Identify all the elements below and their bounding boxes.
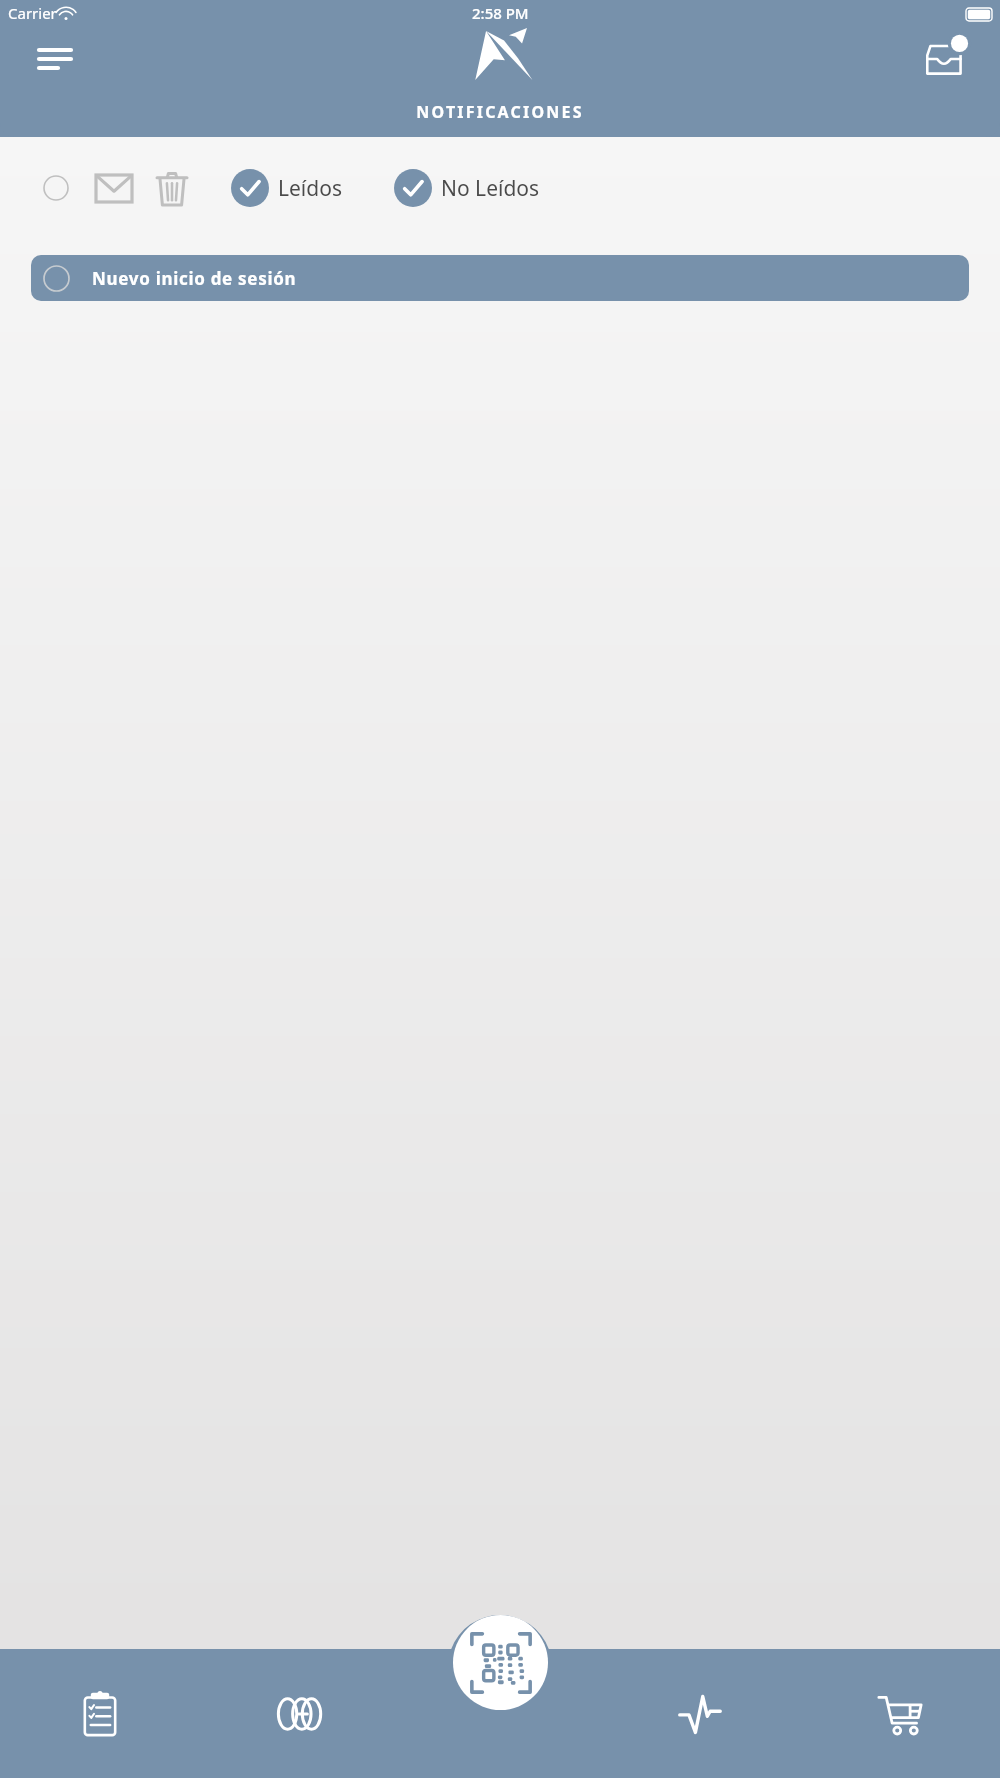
button[interactable]: Scan QR code (453, 1615, 548, 1710)
button[interactable]: Menu (36, 40, 80, 84)
button[interactable]: Coins (200, 1674, 400, 1754)
button[interactable]: Mark as read (89, 163, 139, 213)
button[interactable]: Delete (147, 163, 197, 213)
button[interactable]: Activity (600, 1674, 800, 1754)
staticText: NOTIFICACIONES (416, 101, 584, 123)
button[interactable]: Select all (31, 163, 81, 213)
button[interactable]: Inbox (920, 32, 972, 84)
staticText: Leídos (278, 174, 342, 203)
staticText: 2:58 PM (472, 3, 529, 23)
staticText: Carrier (8, 3, 57, 23)
staticText: No Leídos (441, 174, 540, 203)
button[interactable]: No Leídos (394, 169, 540, 207)
button[interactable]: Nuevo inicio de sesión (31, 255, 969, 301)
button[interactable]: Orders (0, 1674, 200, 1754)
button[interactable]: Cart (800, 1674, 1000, 1754)
staticText: Nuevo inicio de sesión (92, 267, 297, 290)
button[interactable]: Leídos (231, 169, 342, 207)
